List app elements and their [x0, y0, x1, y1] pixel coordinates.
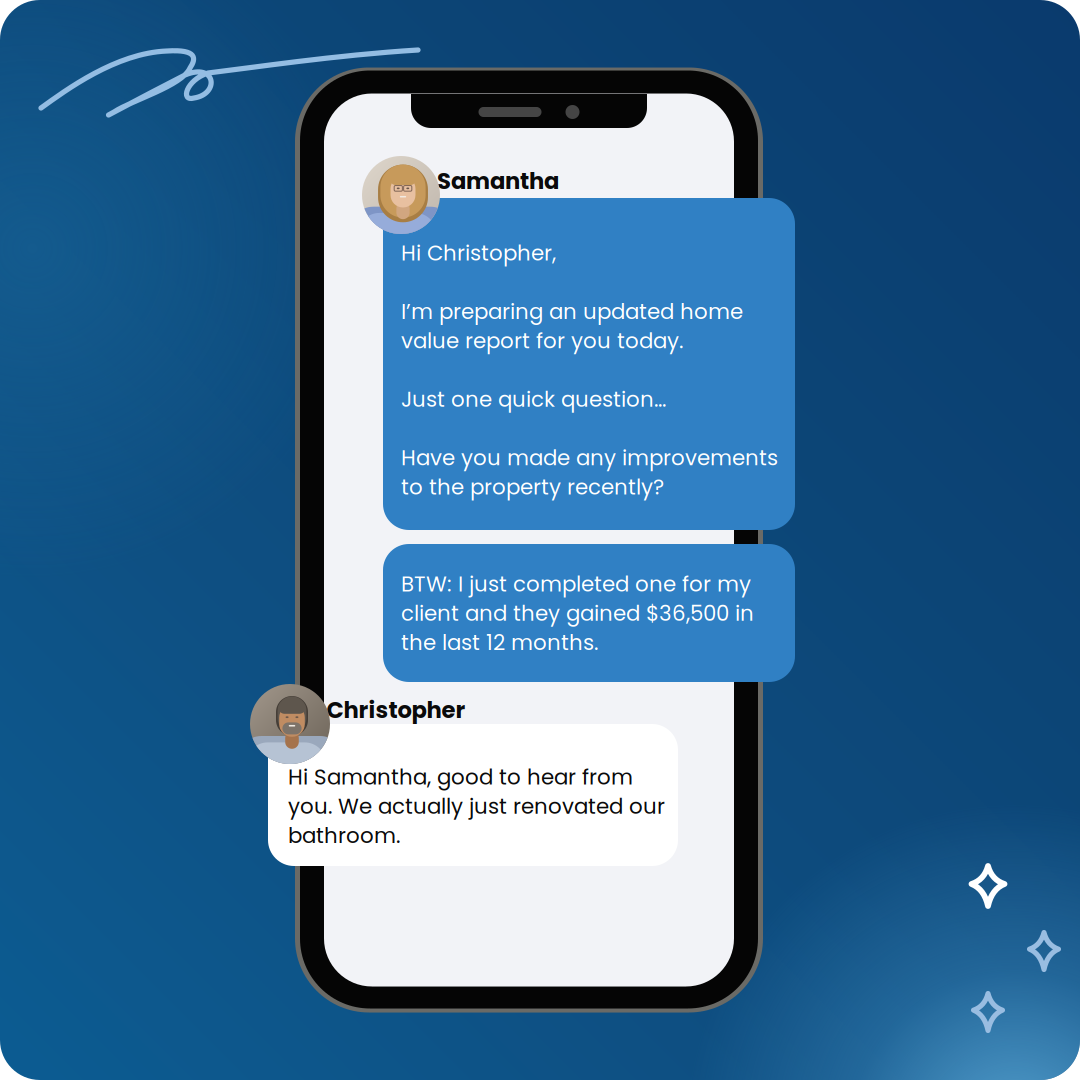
- staticText: Hi Samantha, good to hear from you. We a…: [288, 762, 665, 850]
- staticText: Hi Christopher, I’m preparing an updated…: [401, 238, 778, 502]
- button[interactable]: Hi Christopher, I’m preparing an updated…: [383, 198, 795, 530]
- staticText: Christopher: [326, 694, 465, 726]
- button[interactable]: BTW: I just completed one for my client …: [383, 544, 795, 682]
- staticText: Samantha: [437, 165, 559, 197]
- staticText: BTW: I just completed one for my client …: [401, 569, 754, 657]
- button[interactable]: Hi Samantha, good to hear from you. We a…: [268, 724, 678, 866]
